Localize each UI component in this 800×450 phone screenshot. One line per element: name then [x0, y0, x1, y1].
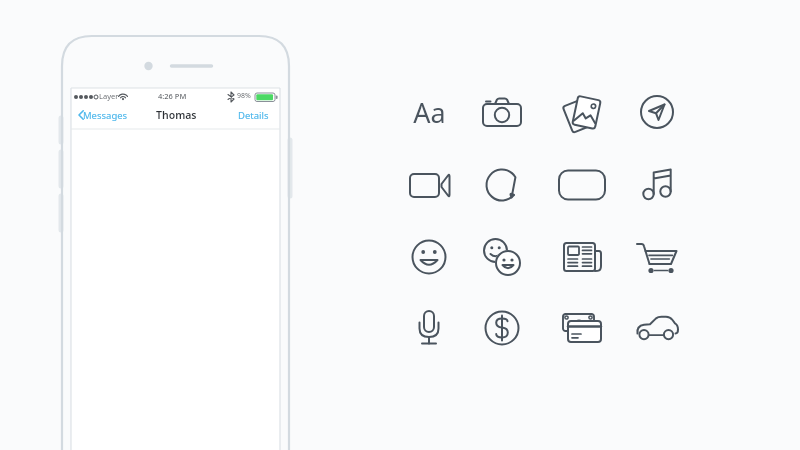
staticText: Details [238, 109, 269, 122]
staticText: Aa [413, 94, 446, 131]
button[interactable]: Shopping [631, 231, 683, 283]
button[interactable]: Details [230, 106, 276, 124]
button[interactable]: Emoji [403, 231, 455, 283]
button[interactable]: News [556, 231, 608, 283]
button[interactable]: Cards [556, 302, 608, 354]
staticText: 98% [237, 91, 251, 101]
button[interactable]: Digital Touch [631, 86, 683, 138]
button[interactable]: Camera [476, 86, 528, 138]
button[interactable]: Friends [476, 231, 528, 283]
button[interactable]: Ride [631, 302, 683, 354]
button[interactable]: Text [403, 86, 455, 138]
button[interactable]: Video [403, 159, 455, 211]
button[interactable]: Photos [556, 86, 608, 138]
button[interactable]: Stickers [476, 159, 528, 211]
button[interactable]: Messages [74, 106, 128, 124]
button[interactable]: Payment [476, 302, 528, 354]
staticText: Thomas [156, 108, 197, 122]
button[interactable]: Voice [403, 302, 455, 354]
staticText: Messages [83, 109, 128, 122]
staticText: Layer [99, 91, 119, 101]
staticText: 4:26 PM [158, 91, 187, 101]
button[interactable]: GIF [556, 159, 608, 211]
button[interactable]: Music [631, 159, 683, 211]
